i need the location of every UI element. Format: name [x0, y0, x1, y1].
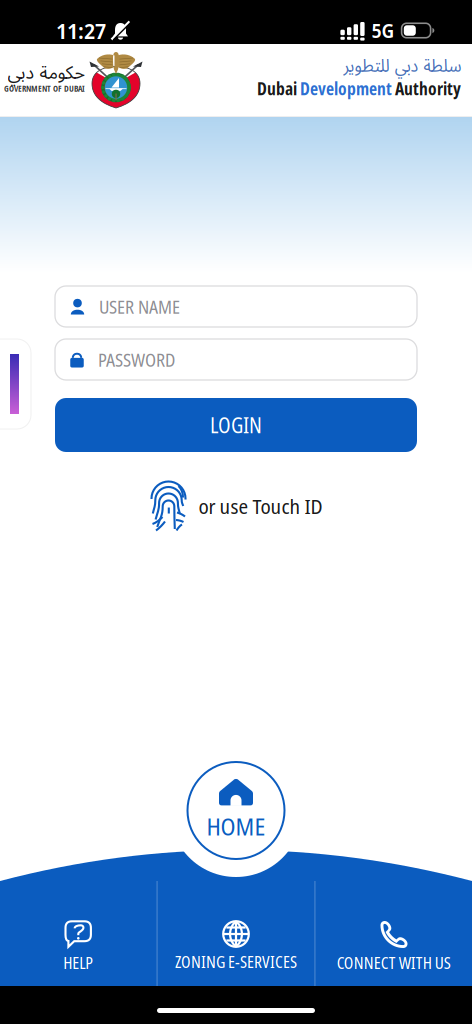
- staticText: Authority: [395, 77, 461, 100]
- staticText: 11:27: [56, 15, 106, 45]
- button[interactable]: or use Touch ID: [149, 478, 322, 534]
- button[interactable]: LOGIN: [55, 398, 417, 452]
- staticText: or use Touch ID: [198, 492, 322, 520]
- staticText: HELP: [63, 951, 93, 974]
- button[interactable]: HELP: [0, 881, 156, 986]
- staticText: سلطة دبي للتطوير: [343, 47, 461, 85]
- staticText: Dubai: [257, 77, 300, 100]
- staticText: Development: [300, 77, 395, 100]
- button[interactable]: USER NAME: [55, 286, 417, 327]
- staticText: حكومة دبي: [7, 54, 85, 92]
- staticText: LOGIN: [210, 410, 262, 440]
- button[interactable]: ZONING E-SERVICES: [158, 881, 314, 986]
- staticText: ZONING E-SERVICES: [175, 950, 297, 973]
- button[interactable]: CONNECT WITH US: [316, 881, 472, 986]
- button[interactable]: PASSWORD: [55, 339, 417, 380]
- staticText: GOVERNMENT OF DUBAI: [4, 83, 85, 94]
- staticText: PASSWORD: [98, 347, 175, 372]
- button[interactable]: HOME: [187, 762, 284, 859]
- staticText: USER NAME: [99, 294, 180, 319]
- staticText: HOME: [206, 810, 265, 843]
- staticText: CONNECT WITH US: [337, 951, 451, 974]
- staticText: 5G: [372, 17, 395, 44]
